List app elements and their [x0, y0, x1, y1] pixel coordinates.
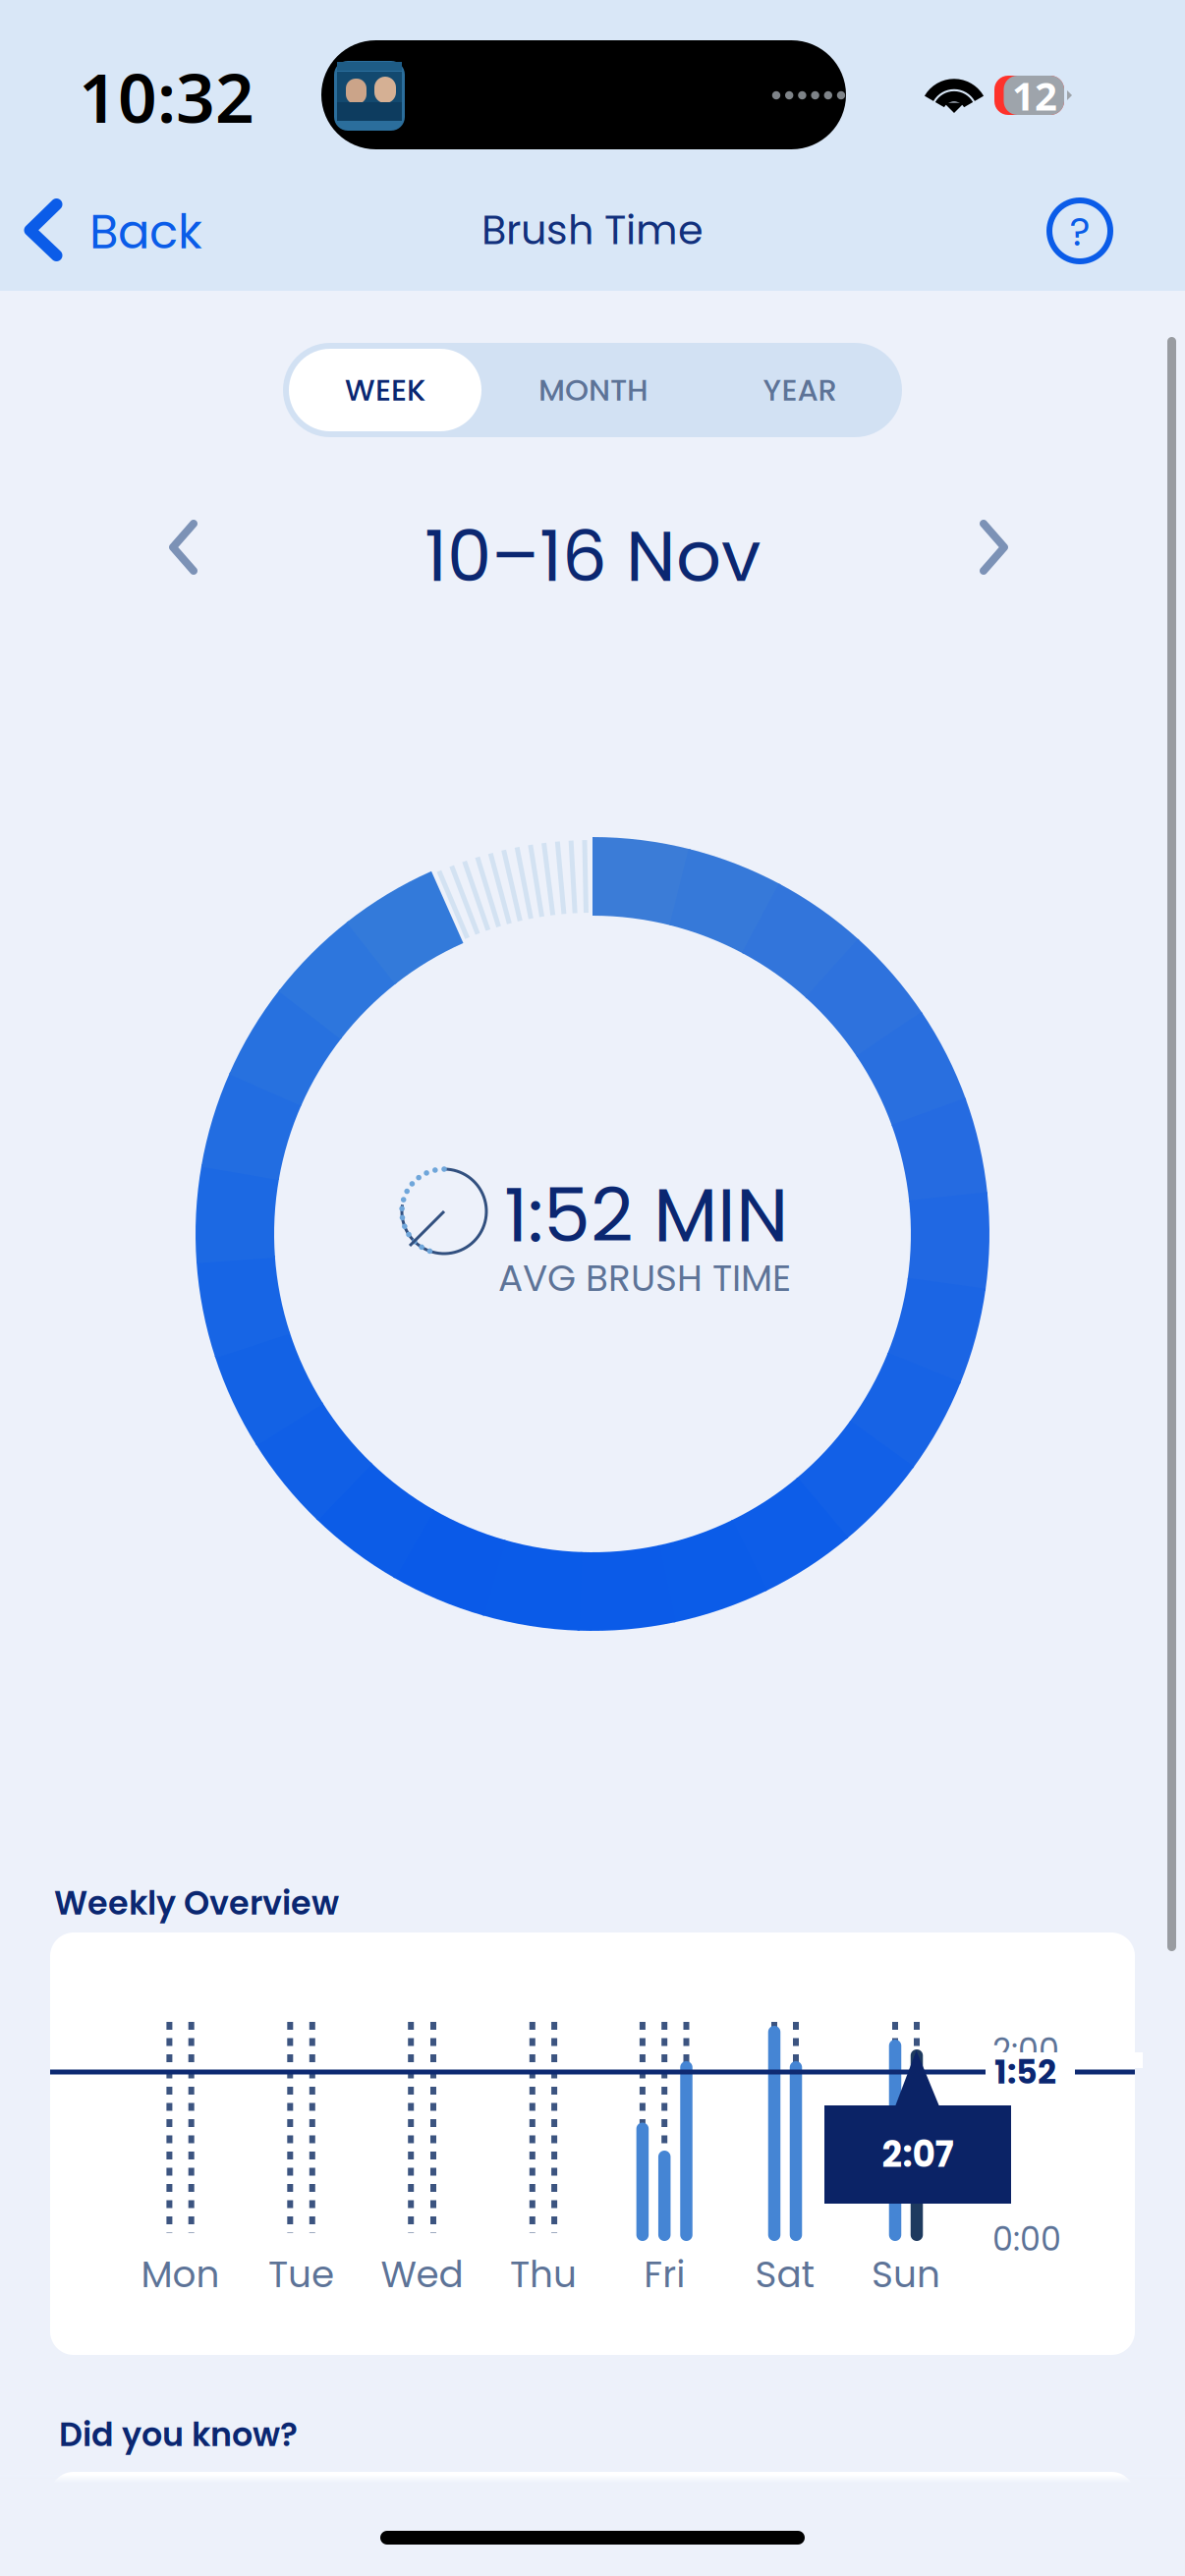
staticText: AVG BRUSH TIME	[498, 1253, 791, 1304]
staticText: 0:00	[992, 2216, 1061, 2262]
staticText: ?	[1070, 204, 1090, 259]
button[interactable]: Back	[0, 0, 1185, 2576]
staticText: Wed	[381, 2249, 463, 2300]
staticText: 2:00	[992, 2027, 1059, 2073]
button[interactable]: Help	[0, 0, 1185, 2576]
staticText: Thu	[510, 2249, 577, 2300]
button[interactable]: YEAR	[0, 0, 1185, 2576]
staticText: 1:52 MIN	[504, 1163, 788, 1268]
button[interactable]: MONTH	[0, 0, 1185, 2576]
staticText: Sat	[755, 2249, 815, 2300]
button[interactable]: Previous week	[0, 0, 1185, 2576]
staticText: Back	[89, 199, 202, 265]
staticText: WEEK	[345, 369, 425, 411]
staticText: Fri	[644, 2249, 685, 2300]
staticText: Tue	[268, 2249, 334, 2300]
staticText: Did you know?	[59, 2412, 298, 2458]
staticText: 12	[1012, 69, 1057, 121]
staticText: Mon	[141, 2249, 220, 2300]
staticText: 10–16 Nov	[424, 507, 761, 606]
staticText: 1:52	[994, 2049, 1056, 2095]
button[interactable]: WEEK	[0, 0, 1185, 2576]
staticText: Brush Time	[481, 202, 704, 258]
staticText: Weekly Overview	[54, 1880, 339, 1926]
staticText: YEAR	[763, 369, 837, 411]
staticText: 10:32	[79, 51, 254, 142]
button[interactable]: Next week	[0, 0, 1185, 2576]
staticText: 2:07	[882, 2130, 954, 2179]
staticText: MONTH	[538, 369, 649, 411]
staticText: Sun	[872, 2249, 940, 2300]
